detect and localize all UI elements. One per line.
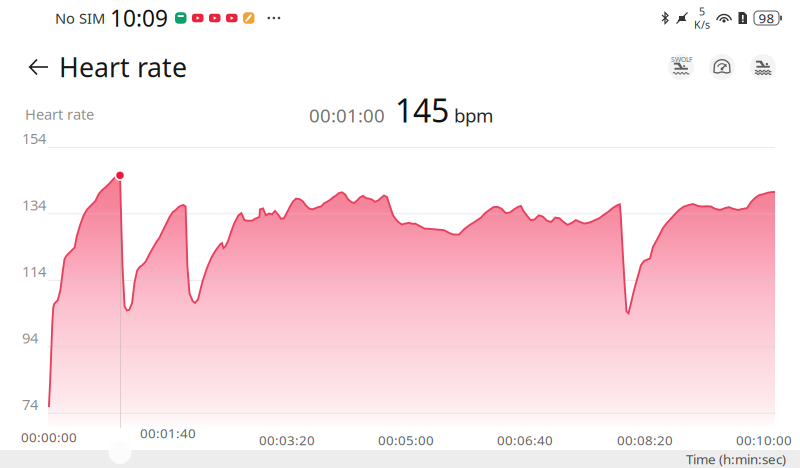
staticText: 10:09 [110, 3, 168, 33]
button[interactable]: Stroke [750, 54, 776, 80]
staticText: 94 [22, 328, 38, 347]
staticText: 00:03:20 [259, 431, 315, 449]
staticText: 00:00:00 [21, 428, 77, 446]
button[interactable]: Back [26, 52, 52, 82]
staticText: 145 [395, 89, 449, 131]
staticText: 154 [22, 129, 46, 148]
button[interactable]: SWOLF [668, 54, 694, 80]
staticText: 114 [22, 262, 46, 281]
staticText: Heart rate [59, 49, 187, 85]
staticText: No SIM [55, 8, 105, 28]
staticText: Heart rate [25, 104, 94, 124]
staticText: Time (h:min:sec) [686, 450, 786, 468]
staticText: 00:05:00 [378, 431, 434, 449]
staticText: 00:01:00 [309, 103, 385, 128]
staticText: 00:08:20 [617, 431, 673, 449]
staticText: K/s [694, 17, 710, 32]
staticText: 5 [699, 4, 705, 18]
staticText: bpm [454, 103, 493, 128]
staticText: 00:10:00 [736, 431, 792, 449]
staticText: 00:06:40 [497, 431, 553, 449]
staticText: 134 [22, 195, 46, 215]
staticText: SWOLF [671, 55, 692, 64]
staticText: 00:01:40 [140, 424, 196, 442]
staticText: 98 [758, 9, 774, 27]
staticText: 74 [22, 394, 38, 414]
button[interactable]: Pace [709, 54, 735, 80]
